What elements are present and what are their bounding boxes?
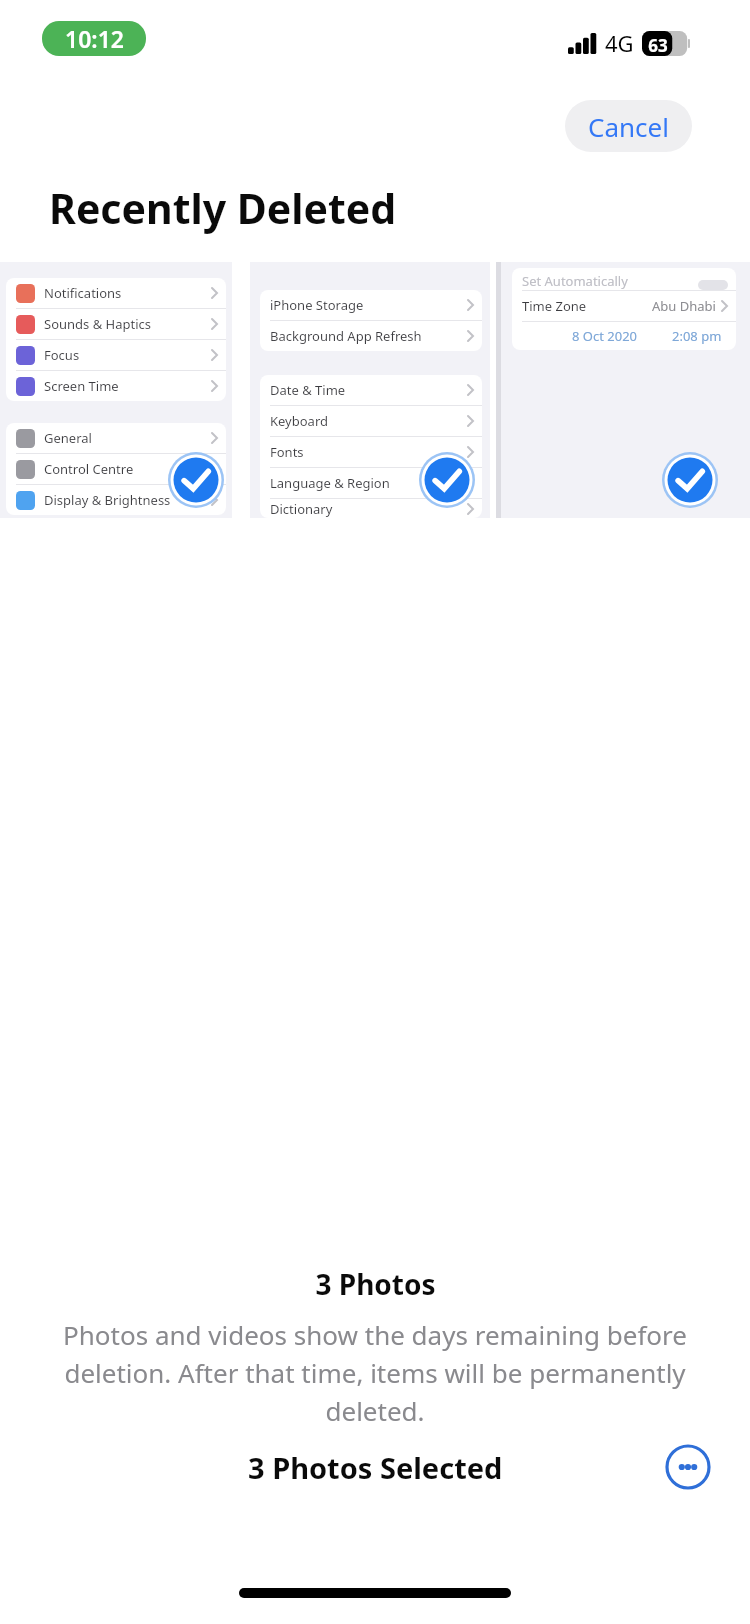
staticText: 4G (605, 28, 634, 58)
staticText: Keyboard (270, 412, 329, 430)
button[interactable]: Cancel (565, 100, 692, 152)
staticText: 63 (645, 34, 671, 57)
staticText: 10:12 (65, 23, 124, 54)
staticText: Notifications (44, 284, 122, 302)
staticText: Focus (44, 346, 80, 364)
staticText: Fonts (270, 443, 304, 461)
button[interactable]: 3 Photos Selected (0, 1440, 750, 1494)
staticText: General (44, 429, 92, 447)
staticText: 3 Photos Selected (248, 1448, 503, 1487)
staticText: Display & Brightness (44, 491, 171, 509)
staticText: Date & Time (270, 381, 346, 399)
staticText: Background App Refresh (270, 327, 422, 345)
button[interactable]: Set Automatically (496, 262, 750, 518)
staticText: Cancel (588, 109, 669, 144)
staticText: 3 Photos (315, 1265, 436, 1303)
button[interactable]: iPhone Storage (250, 262, 490, 518)
staticText: Language & Region (270, 474, 390, 492)
button[interactable]: Notifications (0, 262, 232, 518)
staticText: 2:08 pm (672, 327, 722, 345)
staticText: Sounds & Haptics (44, 315, 152, 333)
staticText: Screen Time (44, 377, 119, 395)
staticText: Dictionary (270, 500, 333, 518)
staticText: Set Automatically (522, 272, 628, 290)
staticText: iPhone Storage (270, 296, 364, 314)
button[interactable]: More options (664, 1443, 712, 1491)
staticText: 8 Oct 2020 (572, 327, 638, 345)
staticText: Recently Deleted (49, 180, 397, 236)
staticText: Control Centre (44, 460, 134, 478)
staticText: Time Zone (522, 297, 587, 315)
staticText: Photos and videos show the days remainin… (16, 1317, 734, 1428)
staticText: Abu Dhabi (652, 297, 716, 315)
